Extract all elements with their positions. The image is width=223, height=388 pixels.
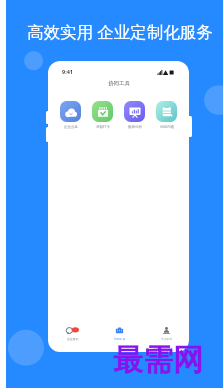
button[interactable]: 企业云盘 bbox=[60, 101, 81, 129]
staticText: 消息沟通 bbox=[160, 125, 174, 129]
button[interactable]: 数据分析 bbox=[124, 101, 145, 129]
button[interactable]: 协同工具 bbox=[96, 327, 143, 341]
button[interactable]: 个人中心 bbox=[143, 327, 189, 341]
staticText: 协同工具 bbox=[108, 80, 130, 87]
staticText: 企业通讯 bbox=[67, 337, 79, 341]
button[interactable]: 消息沟通 bbox=[156, 101, 177, 129]
staticText: 协同工具 bbox=[114, 337, 126, 341]
staticText: 高效实用 企业定制化服务 bbox=[27, 20, 213, 43]
staticText: 数据分析 bbox=[128, 125, 142, 129]
button[interactable]: 企业通讯 bbox=[49, 327, 96, 341]
button[interactable]: 考勤打卡 bbox=[92, 101, 113, 129]
staticText: 最需网 bbox=[113, 341, 203, 379]
staticText: 9:41 bbox=[62, 68, 73, 75]
staticText: 考勤打卡 bbox=[96, 125, 110, 129]
staticText: 个人中心 bbox=[161, 337, 173, 341]
staticText: 企业云盘 bbox=[64, 125, 78, 129]
